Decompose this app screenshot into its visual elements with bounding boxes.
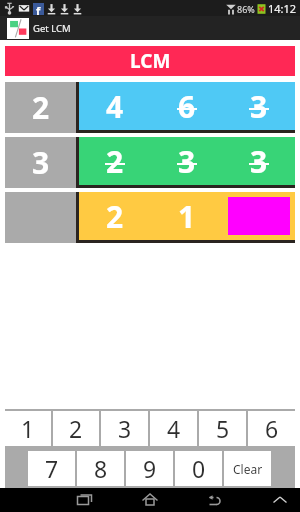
staticText: 5 — [216, 413, 230, 444]
button[interactable]: 3 — [151, 137, 223, 185]
staticText: 4 — [167, 413, 181, 444]
staticText: 6 — [265, 413, 279, 444]
button[interactable]: 2 — [79, 192, 151, 240]
button[interactable]: 8 — [77, 451, 124, 486]
button[interactable]: 4 — [150, 411, 197, 446]
button[interactable]: LCM — [5, 46, 295, 76]
button[interactable]: 5 — [199, 411, 246, 446]
staticText: Clear — [233, 461, 263, 477]
button[interactable]: Expand — [268, 488, 292, 512]
staticText: 3 — [250, 141, 268, 182]
button[interactable]: 6 — [151, 82, 223, 130]
button[interactable]: Clear — [224, 451, 271, 486]
staticText: 2 — [106, 196, 124, 237]
staticText: 1 — [178, 196, 196, 237]
staticText: 4 — [106, 86, 124, 127]
staticText: 3 — [32, 142, 50, 183]
staticText: 1 — [21, 413, 35, 444]
button[interactable]: 3 — [223, 82, 295, 130]
staticText: 14:12 — [268, 1, 297, 16]
button[interactable]: 2 — [5, 82, 76, 133]
button[interactable]: 4 — [79, 82, 151, 130]
button[interactable]: Back — [203, 488, 227, 512]
staticText: 0 — [192, 453, 206, 484]
button[interactable]: Home — [138, 488, 162, 512]
button[interactable]: 7 — [28, 451, 75, 486]
button[interactable]: Recent apps — [73, 488, 97, 512]
staticText: 2 — [32, 87, 50, 128]
staticText: 6 — [178, 86, 196, 127]
button[interactable]: 9 — [126, 451, 173, 486]
staticText: Get LCM — [33, 22, 71, 35]
staticText: LCM — [130, 48, 171, 74]
staticText: 86% — [237, 3, 255, 15]
staticText: 7 — [45, 453, 59, 484]
button[interactable]: 3 — [101, 411, 148, 446]
staticText: 3 — [250, 86, 268, 127]
button[interactable]: 1 — [5, 411, 51, 446]
button[interactable]: 3 — [223, 137, 295, 185]
staticText: 3 — [118, 413, 132, 444]
button[interactable]: 0 — [175, 451, 222, 486]
button[interactable]: 2 — [79, 137, 151, 185]
staticText: 8 — [94, 453, 108, 484]
staticText: 9 — [143, 453, 157, 484]
staticText: 2 — [69, 413, 83, 444]
button[interactable]: 2 — [53, 411, 99, 446]
button[interactable]: 6 — [248, 411, 295, 446]
button[interactable]: 1 — [151, 192, 223, 240]
button[interactable]: 3 — [5, 137, 76, 188]
staticText: 2 — [106, 141, 124, 182]
staticText: f — [36, 3, 41, 15]
staticText: 3 — [178, 141, 196, 182]
